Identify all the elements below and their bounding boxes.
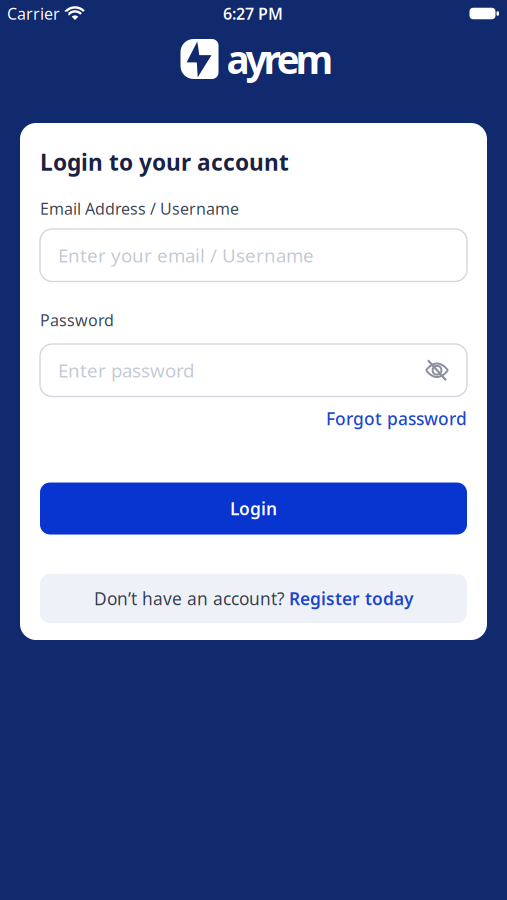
- staticText: Password: [40, 309, 114, 331]
- button[interactable]: Enter your email / Username: [40, 229, 467, 281]
- staticText: Enter your email / Username: [58, 243, 314, 268]
- staticText: Carrier: [7, 3, 60, 24]
- button[interactable]: Enter password: [40, 344, 467, 396]
- staticText: Login to your account: [40, 147, 289, 177]
- staticText: Login: [230, 497, 277, 520]
- button[interactable]: Login: [40, 482, 467, 534]
- button[interactable]: Forgot password: [326, 408, 467, 428]
- staticText: 6:27 PM: [223, 3, 283, 24]
- staticText: Don’t have an account?: [94, 587, 285, 610]
- staticText: Forgot password: [326, 407, 467, 430]
- button[interactable]: Don’t have an account?: [40, 574, 467, 623]
- staticText: Register today: [289, 587, 413, 610]
- staticText: ayrem: [226, 33, 333, 85]
- staticText: Email Address / Username: [40, 198, 239, 219]
- staticText: Enter password: [58, 358, 194, 383]
